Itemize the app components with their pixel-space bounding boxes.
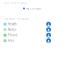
- button[interactable]: Notes: [0, 28, 64, 32]
- staticText: RECENTLY UPDATED: [4, 17, 29, 20]
- staticText: Notes: [8, 28, 16, 31]
- button[interactable]: Files: [0, 39, 64, 43]
- staticText: Your recent apps: [4, 1, 27, 5]
- button[interactable]: Health: [0, 22, 64, 26]
- button[interactable]: Phone: [0, 33, 64, 37]
- staticText: Phone: [8, 33, 18, 37]
- staticText: Files: [8, 39, 14, 42]
- staticText: Health: [8, 22, 17, 26]
- staticText: My Contacts: [26, 7, 41, 10]
